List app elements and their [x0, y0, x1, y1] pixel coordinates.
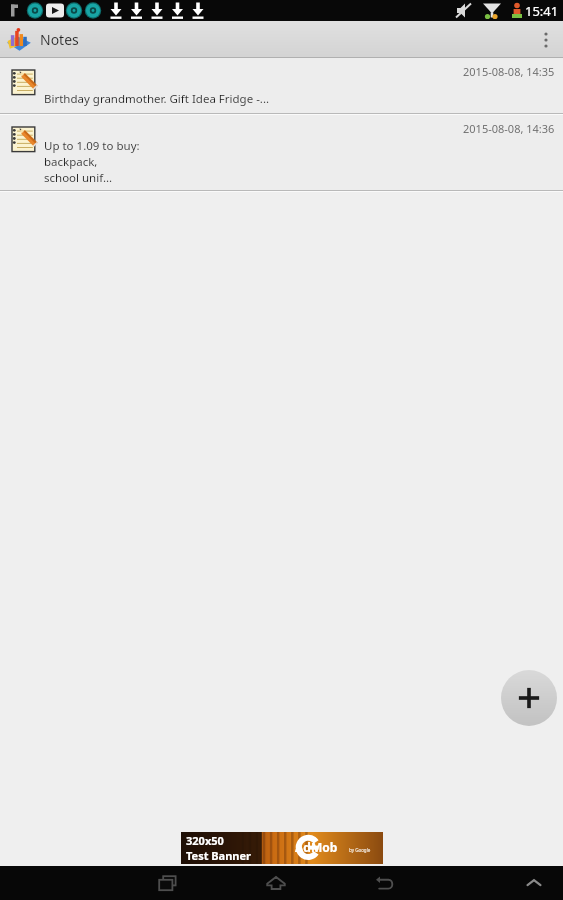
- button[interactable]: Add note: [501, 670, 557, 726]
- button[interactable]: Back: [356, 866, 412, 900]
- button[interactable]: 2015-08-08, 14:35: [0, 58, 563, 113]
- staticText: Test Banner: [186, 848, 251, 863]
- button[interactable]: Expand: [509, 866, 559, 900]
- staticText: AdMob: [295, 839, 338, 855]
- button[interactable]: Home: [248, 866, 304, 900]
- staticText: 15:41: [525, 2, 559, 20]
- staticText: 320x50: [186, 833, 224, 848]
- button[interactable]: 320x50: [181, 832, 383, 864]
- staticText: school unif...: [44, 170, 113, 186]
- staticText: Up to 1.09 to buy:: [44, 138, 140, 154]
- staticText: Birthday grandmother. Gift Idea Fridge -…: [44, 91, 270, 107]
- staticText: 2015-08-08, 14:35: [463, 64, 555, 79]
- staticText: backpack,: [44, 154, 98, 170]
- button[interactable]: More options: [529, 21, 563, 58]
- staticText: by Google: [349, 847, 371, 853]
- staticText: Notes: [40, 30, 79, 49]
- button[interactable]: 2015-08-08, 14:36: [0, 115, 563, 190]
- button[interactable]: Recent apps: [140, 866, 196, 900]
- staticText: 2015-08-08, 14:36: [463, 121, 555, 136]
